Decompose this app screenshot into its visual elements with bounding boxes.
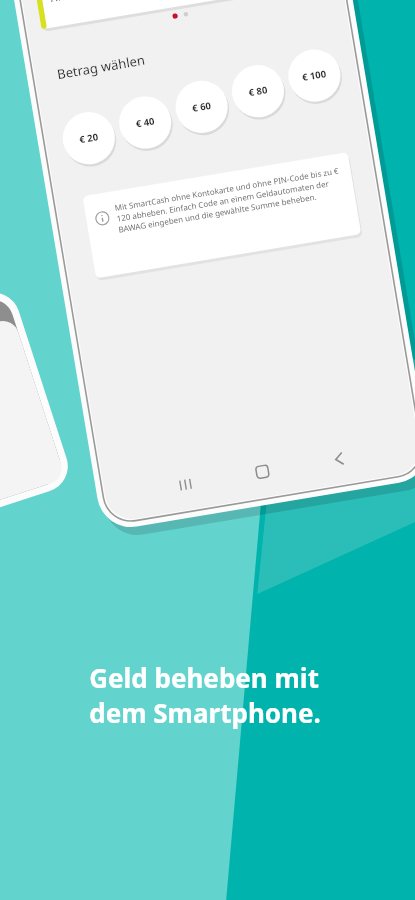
other: Geld beheben mit dem Smartphone xyxy=(0,0,415,900)
button[interactable]: Geld beheben mit dem Smartphone xyxy=(0,0,415,900)
